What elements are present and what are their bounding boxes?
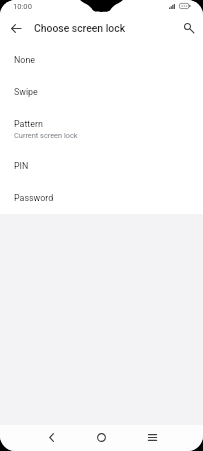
button[interactable]: Swipe: [0, 76, 203, 108]
staticText: Password: [14, 193, 54, 203]
staticText: Swipe: [14, 87, 38, 97]
button[interactable]: Home: [86, 424, 116, 450]
staticText: 10:00: [13, 2, 32, 11]
staticText: PIN: [14, 161, 29, 171]
button[interactable]: Password: [0, 182, 203, 214]
button[interactable]: Back: [36, 424, 66, 450]
button[interactable]: Navigate up: [3, 15, 29, 41]
staticText: Choose screen lock: [34, 22, 126, 34]
button[interactable]: Recent apps: [137, 424, 167, 450]
button[interactable]: Search: [176, 15, 202, 41]
button[interactable]: None: [0, 44, 203, 76]
staticText: Pattern: [14, 119, 43, 129]
staticText: Current screen lock: [14, 131, 78, 140]
button[interactable]: PIN: [0, 150, 203, 182]
staticText: None: [14, 55, 36, 65]
button[interactable]: Pattern: [0, 108, 203, 150]
